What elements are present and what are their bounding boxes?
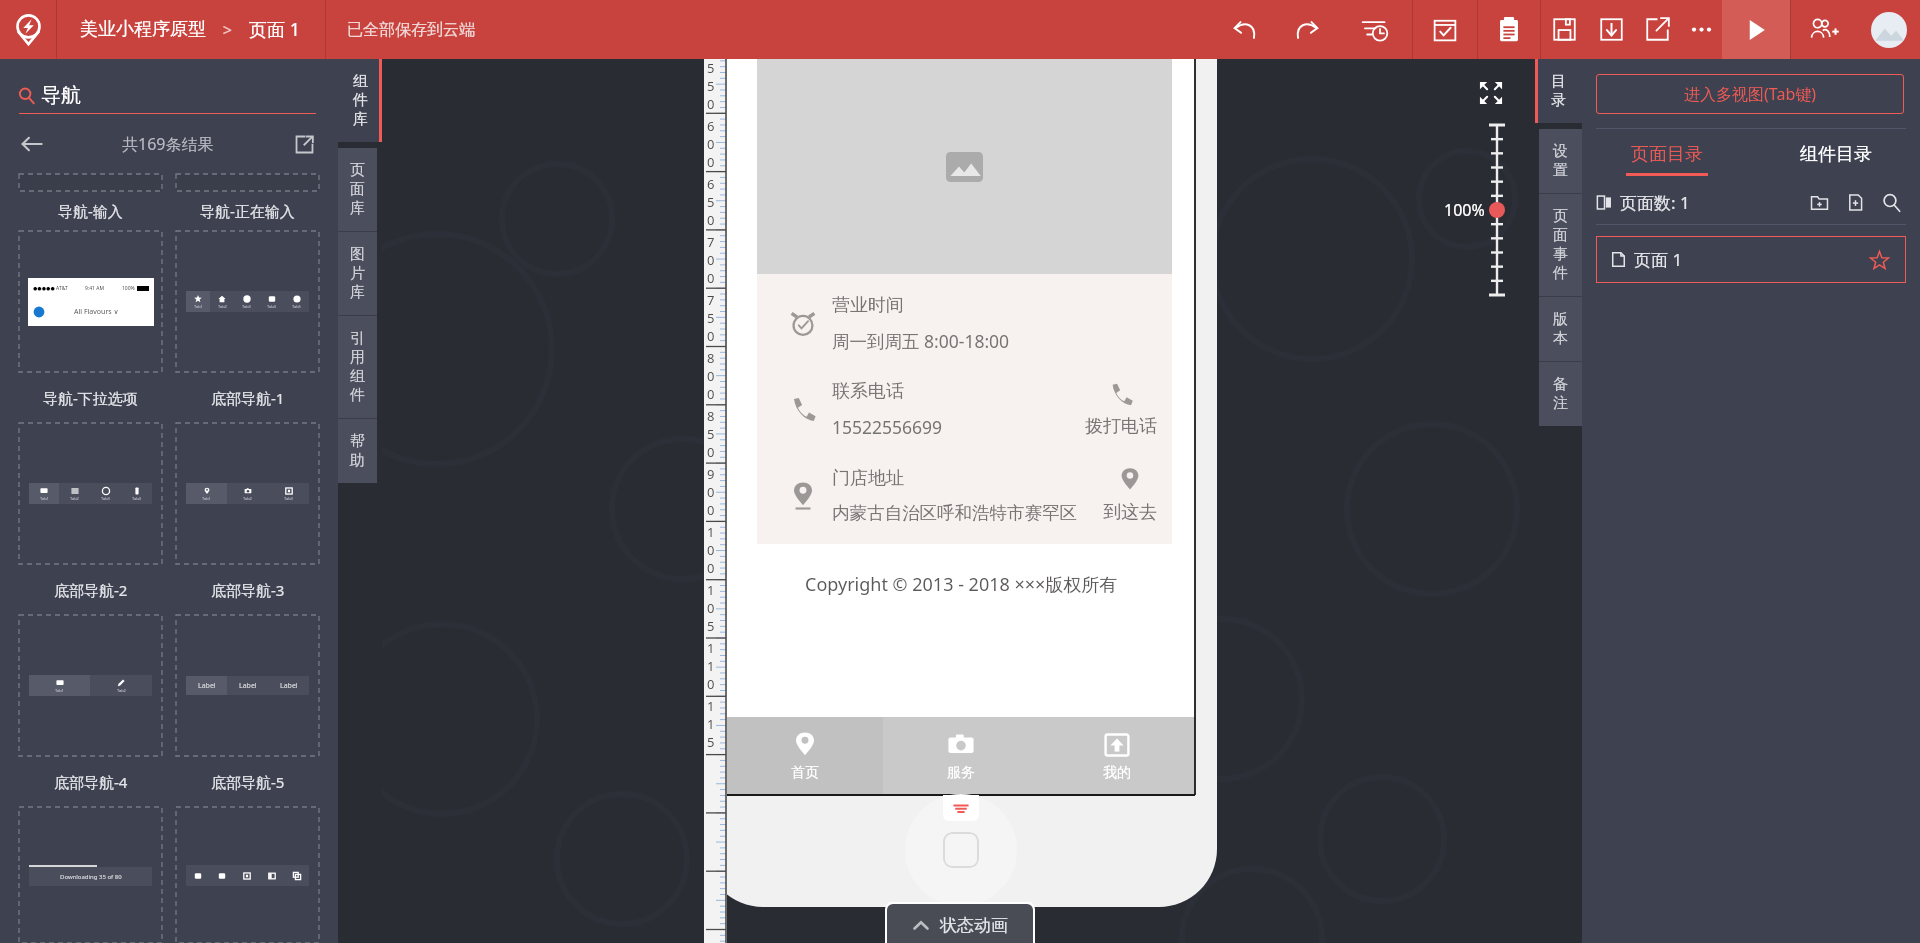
button[interactable]: Search pages: [1878, 189, 1904, 215]
button[interactable]: Component preview: [19, 231, 162, 372]
button[interactable]: 状态动画: [887, 904, 1033, 943]
button[interactable]: 组件目录: [1751, 139, 1920, 180]
button[interactable]: 帮: [338, 419, 377, 483]
staticText: 目: [1551, 72, 1566, 91]
staticText: 共169条结果: [122, 133, 214, 155]
button[interactable]: Back: [19, 131, 45, 157]
staticText: 100%: [1444, 199, 1485, 221]
staticText: 页面数: 1: [1620, 191, 1690, 214]
button[interactable]: 进入多视图(Tab键): [1596, 74, 1904, 114]
staticText: 0: [707, 269, 715, 287]
button[interactable]: Component preview: [176, 423, 319, 564]
button[interactable]: 设: [1539, 129, 1582, 193]
staticText: 底部导航-3: [211, 580, 285, 600]
button[interactable]: Component preview: [19, 423, 162, 564]
staticText: 面: [350, 180, 365, 199]
button[interactable]: New folder: [1806, 189, 1832, 215]
button[interactable]: Invite collaborators: [1791, 0, 1857, 59]
button[interactable]: 我的: [1039, 717, 1195, 795]
button[interactable]: 目: [1535, 59, 1582, 123]
staticText: 0: [707, 559, 715, 577]
button[interactable]: Account: [1857, 0, 1920, 59]
button[interactable]: Redo: [1276, 0, 1338, 59]
staticText: 6: [707, 175, 715, 193]
staticText: 5: [707, 59, 715, 77]
staticText: Label: [239, 681, 257, 691]
staticText: 6: [707, 117, 715, 135]
button[interactable]: Preview: [1722, 0, 1790, 59]
button[interactable]: 备: [1539, 362, 1582, 426]
staticText: 0: [707, 153, 715, 171]
staticText: 1: [707, 523, 715, 541]
button[interactable]: Share: [1634, 0, 1680, 59]
staticText: 拨打电话: [1085, 415, 1157, 438]
staticText: Tab1: [194, 304, 203, 309]
staticText: 0: [707, 385, 715, 403]
staticText: 注: [1553, 394, 1568, 413]
staticText: 页面 1: [249, 17, 300, 42]
button[interactable]: 门店地址: [757, 452, 1172, 538]
button[interactable]: History: [1338, 0, 1412, 59]
staticText: 9: [707, 465, 715, 483]
button[interactable]: 首页: [727, 717, 883, 795]
button[interactable]: 版: [1539, 297, 1582, 361]
staticText: 底部导航-2: [54, 580, 128, 600]
button[interactable]: Open in new: [292, 132, 316, 156]
staticText: Tab3: [284, 496, 293, 501]
staticText: 事: [1553, 245, 1568, 264]
button[interactable]: Component preview: [176, 807, 319, 943]
staticText: 状态动画: [940, 915, 1008, 936]
staticText: 到这去: [1103, 501, 1157, 524]
button[interactable]: 营业时间: [757, 280, 1172, 366]
button[interactable]: 服务: [883, 717, 1039, 795]
button[interactable]: Logo: [0, 0, 56, 59]
button[interactable]: 组: [338, 59, 382, 142]
button[interactable]: Component preview: [19, 615, 162, 756]
button[interactable]: Clipboard: [1478, 0, 1540, 59]
staticText: 5: [707, 425, 715, 443]
staticText: 0: [707, 751, 715, 755]
button[interactable]: 联系电话: [757, 366, 1172, 452]
staticText: 5: [707, 77, 715, 95]
staticText: 导航-正在输入: [200, 201, 295, 221]
staticText: 底部导航-5: [211, 772, 285, 792]
button[interactable]: Component preview: [176, 615, 319, 756]
button[interactable]: Save: [1541, 0, 1588, 59]
staticText: 本: [1553, 329, 1568, 348]
button[interactable]: 拨打电话: [1085, 380, 1157, 438]
staticText: Tab1: [202, 496, 211, 501]
button[interactable]: 引: [338, 316, 377, 418]
button[interactable]: Component preview: [176, 231, 319, 372]
button[interactable]: Fit to screen: [1477, 79, 1505, 107]
button[interactable]: Favourite: [1866, 247, 1892, 273]
button[interactable]: Undo: [1214, 0, 1276, 59]
staticText: 内蒙古自治区呼和浩特市赛罕区: [832, 502, 1077, 524]
staticText: Tab2: [70, 496, 79, 501]
staticText: 5: [707, 193, 715, 211]
staticText: Downloading 35 of 80: [60, 873, 122, 881]
staticText: Label: [198, 681, 216, 691]
button[interactable]: 图: [338, 232, 377, 315]
button[interactable]: Download: [1588, 0, 1634, 59]
button[interactable]: Component preview: [19, 807, 162, 943]
button[interactable]: New page: [1842, 189, 1868, 215]
staticText: Copyright © 2013 - 2018 ×××版权所有: [805, 572, 1118, 597]
staticText: >: [206, 19, 249, 41]
button[interactable]: 页面 1: [1596, 236, 1906, 283]
button[interactable]: 页: [338, 148, 377, 231]
button[interactable]: 页: [1539, 194, 1582, 296]
staticText: 进入多视图(Tab键): [1684, 83, 1817, 105]
staticText: 0: [707, 95, 715, 113]
button[interactable]: 美业小程序原型: [57, 0, 325, 59]
staticText: 1: [707, 581, 715, 599]
button[interactable]: 页面目录: [1582, 139, 1751, 180]
staticText: 库: [353, 110, 368, 129]
button[interactable]: Checklist: [1413, 0, 1477, 59]
staticText: 0: [707, 675, 715, 693]
staticText: 底部导航-4: [54, 772, 128, 792]
button[interactable]: More: [1680, 0, 1722, 59]
staticText: 1: [707, 715, 715, 733]
staticText: 页面 1: [1634, 248, 1683, 271]
button[interactable]: 到这去: [1103, 466, 1157, 524]
staticText: Tab5: [292, 304, 301, 309]
